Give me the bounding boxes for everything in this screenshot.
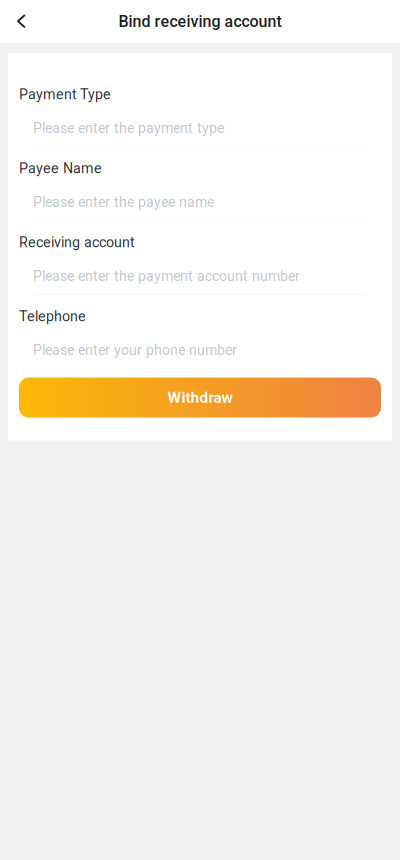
staticText: Please enter your phone number: [33, 342, 237, 359]
button[interactable]: Withdraw: [19, 377, 381, 417]
staticText: Please enter the payment type: [33, 120, 224, 137]
staticText: Please enter the payee name: [33, 194, 214, 211]
staticText: Receiving account: [19, 234, 135, 251]
staticText: Bind receiving account: [118, 12, 281, 31]
staticText: Telephone: [19, 308, 86, 325]
staticText: Payment Type: [19, 86, 111, 103]
staticText: Payee Name: [19, 160, 102, 177]
staticText: Please enter the payment account number: [33, 268, 300, 285]
staticText: Withdraw: [167, 388, 232, 406]
button[interactable]: Back: [0, 0, 43, 43]
